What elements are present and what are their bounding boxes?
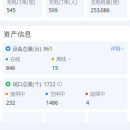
staticText: i bbox=[59, 82, 60, 86]
staticText: > bbox=[121, 46, 123, 51]
staticText: 离线 bbox=[56, 56, 66, 62]
staticText: 端口总量(个) bbox=[12, 80, 41, 88]
staticText: 故障中 bbox=[90, 91, 105, 97]
staticText: > bbox=[68, 56, 70, 62]
staticText: 充电电量(度) bbox=[90, 0, 119, 6]
staticText: 4 bbox=[86, 99, 89, 106]
staticText: 详情 bbox=[110, 45, 120, 52]
staticText: 在线 bbox=[10, 56, 20, 62]
staticText: 253,086 bbox=[90, 7, 109, 14]
staticText: 861 bbox=[43, 45, 52, 52]
staticText: 1722 bbox=[43, 80, 55, 88]
button[interactable]: 充电订单(人) bbox=[45, 0, 84, 17]
button[interactable]: 设备总量(台) bbox=[2, 41, 127, 75]
staticText: 846 bbox=[6, 64, 15, 72]
staticText: 使用中 bbox=[10, 91, 25, 97]
staticText: 545 bbox=[6, 7, 15, 14]
staticText: 1486 bbox=[46, 99, 58, 106]
staticText: 充电订单(笔) bbox=[6, 0, 35, 6]
staticText: 15 bbox=[52, 64, 58, 72]
staticText: 232 bbox=[6, 99, 15, 106]
staticText: 资产信息 bbox=[3, 30, 31, 38]
staticText: 设备总量(台) bbox=[12, 45, 41, 52]
staticText: 空闲中 bbox=[50, 91, 65, 97]
button[interactable]: 详情 bbox=[109, 44, 124, 53]
staticText: 509 bbox=[48, 7, 57, 14]
button[interactable]: 充电订单(笔) bbox=[3, 0, 42, 17]
staticText: 充电订单(人) bbox=[48, 0, 77, 6]
button[interactable]: 充电电量(度) bbox=[87, 0, 126, 17]
button[interactable]: 端口总量(个) bbox=[2, 77, 127, 109]
